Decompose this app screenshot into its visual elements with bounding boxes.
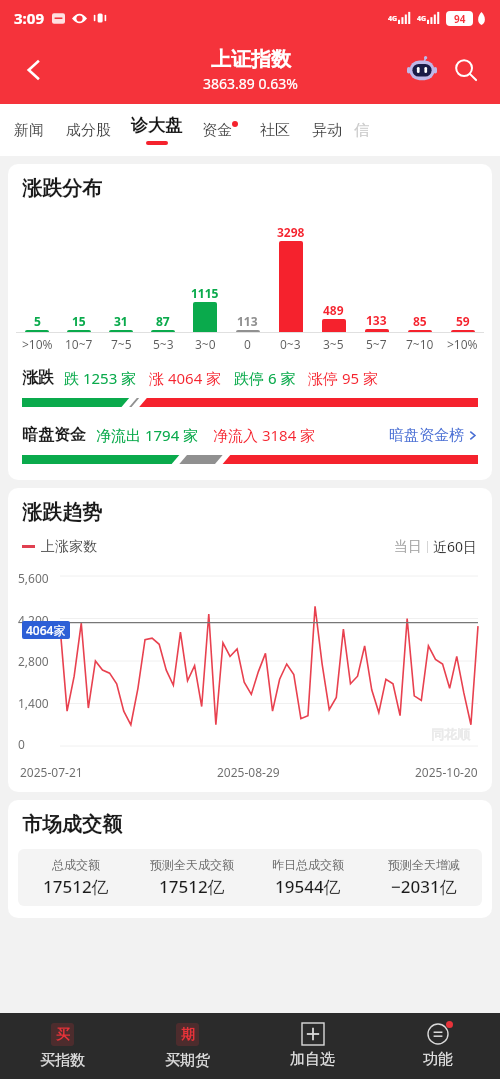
staticText: 涨跌	[22, 368, 54, 388]
staticText: 异动	[312, 121, 342, 140]
staticText: 近60日	[433, 537, 478, 556]
staticText: 昨日总成交额	[272, 857, 344, 872]
staticText: 85	[413, 313, 427, 329]
staticText: 涨跌分布	[22, 176, 102, 201]
staticText: 预测全天增减	[388, 857, 460, 872]
button[interactable]: 成分股	[66, 104, 111, 156]
staticText: 市场成交额	[22, 812, 122, 837]
button[interactable]: 加自选	[250, 1013, 375, 1079]
staticText: 加自选	[290, 1050, 335, 1069]
staticText: 2,800	[18, 653, 49, 669]
button[interactable]: 当日	[394, 538, 422, 556]
staticText: 2025-10-20	[415, 764, 478, 780]
staticText: 跌停 6 家	[234, 368, 296, 388]
staticText: 10~7	[65, 336, 93, 352]
staticText: 同花顺	[431, 726, 470, 742]
button[interactable]: 异动	[312, 104, 342, 156]
staticText: 19544亿	[275, 875, 341, 898]
staticText: 17512亿	[43, 875, 109, 898]
staticText: 3863.89 0.63%	[203, 74, 298, 93]
staticText: 跌 1253 家	[64, 368, 137, 388]
staticText: 5,600	[18, 570, 49, 586]
staticText: 上涨家数	[41, 538, 97, 556]
staticText: 上证指数	[211, 47, 291, 72]
staticText: 7~5	[111, 336, 132, 352]
staticText: 1,400	[18, 695, 49, 711]
staticText: 113	[237, 313, 258, 329]
staticText: >10%	[22, 336, 53, 352]
button[interactable]: 期	[125, 1013, 250, 1079]
staticText: 新闻	[14, 121, 44, 140]
staticText: 15	[72, 313, 86, 329]
staticText: 7~10	[406, 336, 434, 352]
staticText: 5~3	[153, 336, 174, 352]
staticText: 94	[454, 12, 466, 26]
button[interactable]: Back	[10, 46, 58, 94]
staticText: 4G	[417, 14, 427, 24]
staticText: 17512亿	[159, 875, 225, 898]
staticText: 3~0	[195, 336, 216, 352]
staticText: 买期货	[165, 1051, 210, 1070]
button[interactable]: AI assistant	[400, 48, 444, 92]
staticText: 功能	[423, 1050, 453, 1069]
staticText: 暗盘资金	[22, 425, 86, 445]
staticText: 净流出 1794 家	[96, 425, 199, 445]
button[interactable]: 近60日	[433, 537, 478, 556]
staticText: 暗盘资金榜	[389, 426, 464, 445]
staticText: 涨停 95 家	[308, 368, 378, 388]
staticText: 59	[456, 313, 470, 329]
staticText: 诊大盘	[131, 115, 182, 136]
button[interactable]: 新闻	[14, 104, 44, 156]
staticText: 4064家	[26, 622, 66, 638]
staticText: 3~5	[323, 336, 344, 352]
staticText: 买指数	[40, 1051, 85, 1070]
staticText: 成分股	[66, 121, 111, 140]
button[interactable]: Search	[444, 48, 488, 92]
button[interactable]: 社区	[260, 104, 290, 156]
button[interactable]: 暗盘资金	[22, 425, 478, 445]
staticText: 预测全天成交额	[150, 857, 234, 872]
staticText: 买	[56, 1026, 70, 1044]
staticText: 涨跌趋势	[22, 500, 102, 525]
staticText: 期	[181, 1026, 195, 1044]
staticText: 社区	[260, 121, 290, 140]
staticText: 总成交额	[52, 857, 100, 872]
staticText: 2025-07-21	[20, 764, 83, 780]
staticText: 4,200	[18, 612, 49, 628]
staticText: 当日	[394, 538, 422, 556]
staticText: 0	[18, 736, 25, 752]
staticText: 涨 4064 家	[149, 368, 222, 388]
staticText: 3:09	[14, 8, 44, 28]
staticText: 31	[114, 313, 128, 329]
staticText: 87	[156, 313, 170, 329]
button[interactable]: 买	[0, 1013, 125, 1079]
staticText: 5	[34, 313, 41, 329]
button[interactable]: 诊大盘	[131, 104, 182, 156]
staticText: −2031亿	[391, 875, 457, 898]
staticText: 资金	[202, 121, 232, 140]
staticText: 4G	[388, 14, 398, 24]
staticText: 0~3	[280, 336, 301, 352]
staticText: 0	[244, 336, 251, 352]
button[interactable]: 功能	[375, 1013, 500, 1079]
staticText: 489	[323, 302, 344, 318]
staticText: >10%	[447, 336, 478, 352]
staticText: 2025-08-29	[217, 764, 280, 780]
staticText: 净流入 3184 家	[213, 425, 316, 445]
staticText: 5~7	[366, 336, 387, 352]
staticText: 3298	[277, 224, 305, 240]
staticText: 133	[366, 312, 387, 328]
button[interactable]: 资金	[202, 104, 238, 156]
staticText: 1115	[191, 285, 219, 301]
staticText: 信	[354, 121, 369, 140]
